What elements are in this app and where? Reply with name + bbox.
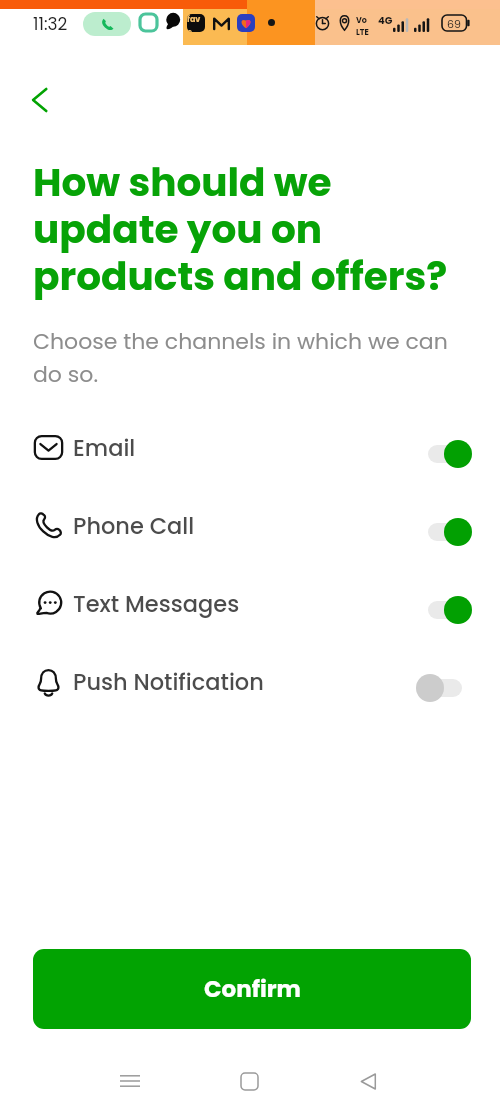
staticText: Text Messages xyxy=(73,588,240,619)
staticText: fave xyxy=(187,14,205,32)
button[interactable]: Recent apps xyxy=(106,1057,154,1105)
staticText: 69 xyxy=(447,16,461,31)
staticText: Push Notification xyxy=(73,666,264,697)
button[interactable]: Email xyxy=(0,415,500,493)
staticText: Phone Call xyxy=(73,510,195,541)
button[interactable]: Confirm xyxy=(33,949,471,1029)
staticText: Email xyxy=(73,432,136,463)
button[interactable]: Home xyxy=(225,1057,273,1105)
button[interactable]: Back xyxy=(22,81,60,119)
staticText: LTE xyxy=(356,27,369,38)
staticText: How should we update you on products and… xyxy=(33,162,464,303)
button[interactable]: Back xyxy=(344,1057,392,1105)
staticText: Confirm xyxy=(204,973,301,1005)
staticText: 4G xyxy=(378,13,393,27)
button[interactable]: Text Messages xyxy=(0,571,500,649)
staticText: Vo xyxy=(356,15,367,26)
button[interactable]: Push Notification xyxy=(0,649,500,727)
staticText: Choose the channels in which we can do s… xyxy=(33,325,474,391)
staticText: 11:32 xyxy=(33,12,68,36)
button[interactable]: Phone Call xyxy=(0,493,500,571)
